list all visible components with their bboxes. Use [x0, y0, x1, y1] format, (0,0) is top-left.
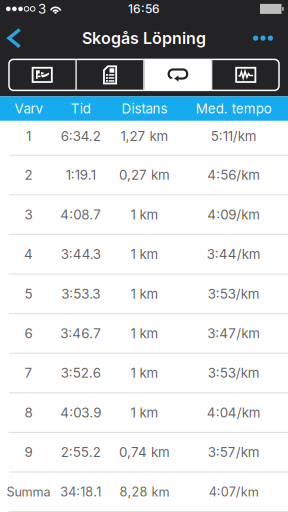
staticText: 8,28 km — [119, 484, 169, 499]
staticText: 3:53/km — [208, 286, 260, 302]
staticText: 2 — [24, 167, 32, 183]
staticText: 6:34.2 — [61, 128, 101, 144]
button[interactable]: More — [239, 19, 288, 58]
staticText: 1:19.1 — [66, 167, 96, 183]
staticText: 3:53/km — [208, 365, 260, 381]
staticText: 3:53.3 — [61, 286, 100, 302]
staticText: Varv — [14, 100, 42, 117]
staticText: 3:47/km — [207, 325, 260, 341]
staticText: 0,27 km — [119, 167, 170, 183]
staticText: 0,74 km — [119, 444, 170, 460]
staticText: 3:52.6 — [61, 365, 101, 381]
staticText: 3 — [38, 1, 46, 17]
staticText: 1 km — [130, 404, 158, 421]
staticText: 4:07/km — [209, 484, 259, 499]
button[interactable]: Back — [0, 19, 35, 58]
staticText: 3:44/km — [207, 246, 261, 262]
staticText: 4:09/km — [207, 206, 260, 223]
staticText: 4:04/km — [207, 404, 261, 421]
staticText: 3:44.3 — [61, 246, 101, 262]
staticText: Tid — [71, 100, 91, 117]
staticText: 4:56/km — [207, 167, 260, 183]
button[interactable]: Laps — [145, 59, 211, 90]
staticText: 9 — [24, 444, 32, 460]
staticText: 3:57/km — [208, 444, 260, 460]
staticText: 1 km — [130, 365, 158, 381]
staticText: 1,27 km — [120, 128, 168, 144]
staticText: 5:11/km — [211, 128, 257, 144]
staticText: 1 — [26, 128, 31, 144]
staticText: Skogås Löpning — [82, 28, 206, 48]
staticText: 4:03.9 — [60, 404, 101, 421]
button[interactable]: Graph — [213, 59, 279, 90]
staticText: 16:56 — [128, 2, 160, 16]
staticText: 3 — [24, 206, 32, 223]
staticText: 4:08.7 — [60, 206, 101, 223]
staticText: 5 — [24, 286, 32, 302]
staticText: 1 km — [130, 286, 158, 302]
staticText: 1 km — [130, 325, 158, 341]
staticText: Med. tempo — [196, 100, 272, 117]
staticText: 4 — [24, 246, 33, 262]
staticText: 1 km — [130, 206, 158, 223]
staticText: Distans — [121, 100, 167, 117]
staticText: 2:55.2 — [61, 444, 101, 460]
staticText: Summa — [6, 484, 50, 499]
staticText: 1 km — [130, 246, 158, 262]
button[interactable]: Splits — [77, 59, 143, 90]
staticText: 34:18.1 — [60, 484, 101, 499]
staticText: 8 — [24, 404, 32, 421]
staticText: 6 — [24, 325, 32, 341]
staticText: 7 — [24, 365, 32, 381]
button[interactable]: Map — [9, 59, 75, 90]
staticText: 3:46.7 — [60, 325, 101, 341]
